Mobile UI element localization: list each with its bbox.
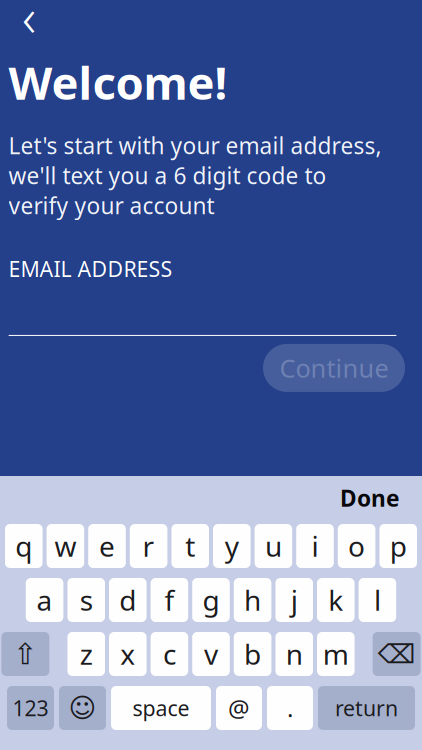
button[interactable]: i [296, 524, 334, 568]
staticText: Let's start with your email address, we'… [8, 130, 381, 221]
staticText: z [80, 635, 93, 673]
staticText: space [132, 694, 189, 722]
staticText: e [99, 527, 115, 565]
button[interactable]: Shift [1, 632, 49, 676]
staticText: ☺ [68, 693, 96, 723]
staticText: return [335, 694, 398, 722]
staticText: h [244, 581, 261, 619]
staticText: ‹ [22, 0, 36, 51]
staticText: k [328, 581, 343, 619]
staticText: p [390, 527, 407, 565]
button[interactable]: b [234, 632, 271, 676]
button[interactable]: Continue [263, 344, 405, 392]
staticText: EMAIL ADDRESS [8, 255, 172, 283]
staticText: r [143, 527, 155, 565]
staticText: w [54, 527, 76, 565]
button[interactable]: return [318, 686, 415, 730]
staticText: o [348, 527, 365, 565]
staticText: Done [340, 483, 400, 513]
staticText: m [323, 635, 349, 673]
button[interactable]: p [379, 524, 417, 568]
staticText: b [244, 635, 261, 673]
button[interactable]: m [317, 632, 355, 676]
staticText: ⌫ [378, 639, 416, 669]
button[interactable]: . [267, 686, 313, 730]
button[interactable]: r [130, 524, 167, 568]
staticText: q [15, 527, 32, 565]
button[interactable]: l [359, 578, 396, 622]
button[interactable]: q [5, 524, 43, 568]
button[interactable]: e [88, 524, 126, 568]
staticText: t [185, 527, 195, 565]
staticText: Welcome! [8, 52, 227, 112]
staticText: x [120, 635, 135, 673]
button[interactable]: Done [332, 477, 408, 519]
button[interactable]: v [192, 632, 230, 676]
button[interactable]: f [151, 578, 188, 622]
button[interactable]: space [111, 686, 211, 730]
button[interactable]: @ [216, 686, 262, 730]
button[interactable]: u [255, 524, 292, 568]
staticText: v [204, 635, 218, 673]
staticText: u [265, 527, 282, 565]
staticText: s [80, 581, 93, 619]
staticText: Continue [279, 351, 388, 385]
button[interactable]: c [151, 632, 188, 676]
button[interactable]: g [192, 578, 230, 622]
staticText: n [286, 635, 303, 673]
staticText: l [374, 581, 381, 619]
button[interactable]: w [47, 524, 84, 568]
button[interactable]: k [317, 578, 355, 622]
staticText: d [119, 581, 136, 619]
button[interactable]: o [338, 524, 375, 568]
button[interactable]: a [26, 578, 63, 622]
staticText: ⇧ [13, 637, 38, 671]
button[interactable]: t [171, 524, 209, 568]
staticText: @ [228, 692, 250, 724]
button[interactable]: y [213, 524, 251, 568]
staticText: . [287, 692, 293, 724]
button[interactable]: Delete [373, 632, 421, 676]
button[interactable]: h [234, 578, 271, 622]
staticText: a [37, 581, 53, 619]
button[interactable]: n [275, 632, 313, 676]
staticText: g [202, 581, 219, 619]
button[interactable]: 123 [7, 686, 54, 730]
button[interactable]: Back [6, 0, 52, 38]
button[interactable]: s [67, 578, 105, 622]
staticText: y [225, 527, 239, 565]
button[interactable]: j [275, 578, 313, 622]
staticText: c [163, 635, 176, 673]
staticText: 123 [12, 694, 48, 722]
staticText: j [291, 581, 298, 619]
staticText: i [311, 527, 318, 565]
button[interactable]: z [67, 632, 105, 676]
staticText: f [164, 581, 174, 619]
button[interactable]: d [109, 578, 147, 622]
button[interactable]: x [109, 632, 147, 676]
button[interactable]: Emoji [59, 686, 106, 730]
